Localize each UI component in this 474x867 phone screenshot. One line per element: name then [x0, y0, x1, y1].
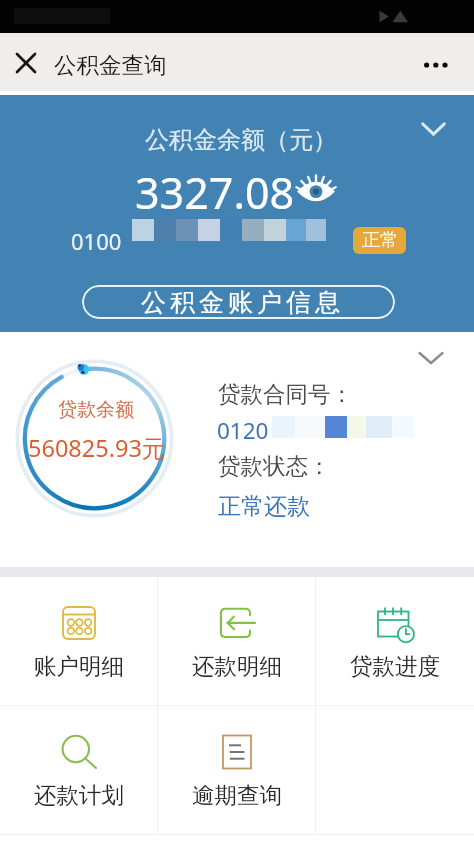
staticText: 3327.08 — [135, 163, 295, 222]
button[interactable]: Toggle balance visibility — [296, 168, 336, 202]
staticText: 还款明细 — [192, 652, 282, 680]
button[interactable]: More options — [411, 40, 461, 90]
button[interactable]: Collapse provident fund card — [417, 113, 449, 145]
button[interactable]: 逾期查询 — [158, 706, 316, 835]
staticText: 还款计划 — [34, 781, 124, 809]
staticText: 贷款合同号： — [218, 380, 353, 408]
staticText: 560825.93元 — [28, 432, 166, 464]
button[interactable]: 还款计划 — [0, 706, 158, 835]
staticText: 贷款进度 — [350, 652, 440, 680]
staticText: 公积金查询 — [54, 51, 167, 79]
staticText: 公积金余额（元） — [145, 125, 337, 155]
button[interactable]: 正常 — [353, 227, 406, 254]
button[interactable]: 公积金账户信息 — [82, 285, 395, 319]
staticText: 贷款余额 — [58, 398, 134, 422]
button[interactable]: 还款明细 — [158, 577, 316, 706]
staticText: 0120 — [217, 415, 269, 446]
button[interactable]: 账户明细 — [0, 577, 158, 706]
button[interactable]: Collapse loan info card — [415, 342, 447, 374]
staticText: 正常 — [362, 229, 398, 252]
button[interactable]: 贷款进度 — [316, 577, 474, 706]
button[interactable]: Close — [8, 45, 44, 81]
staticText: 贷款状态： — [218, 452, 331, 480]
staticText: 正常还款 — [218, 492, 310, 521]
staticText: 逾期查询 — [192, 781, 282, 809]
staticText: 账户明细 — [34, 652, 124, 680]
staticText: 公积金账户信息 — [139, 287, 342, 318]
staticText: 0100 — [71, 226, 122, 256]
